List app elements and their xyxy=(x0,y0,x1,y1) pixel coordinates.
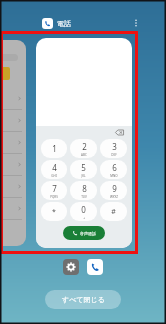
staticText: DEF xyxy=(111,153,117,157)
staticText: 7 xyxy=(52,183,57,194)
staticText: TUV xyxy=(81,195,87,199)
button[interactable]: * xyxy=(41,202,67,221)
staticText: 8 xyxy=(82,183,87,194)
staticText: ABC xyxy=(81,153,87,157)
button[interactable]: # xyxy=(100,202,127,221)
button[interactable]: 設定アプリのプレビュー xyxy=(0,40,26,246)
staticText: JKL xyxy=(81,174,86,178)
button[interactable]: 9 xyxy=(100,181,127,200)
button[interactable]: 7 xyxy=(41,181,67,200)
staticText: すべて閉じる xyxy=(62,295,105,304)
staticText: PQRS xyxy=(50,195,58,199)
staticText: # xyxy=(111,207,116,217)
staticText: WXYZ xyxy=(110,195,118,199)
staticText: MNO xyxy=(110,174,118,178)
button[interactable]: 削除 xyxy=(36,38,132,248)
button[interactable]: 1 xyxy=(41,139,67,158)
staticText: 音声通話 xyxy=(80,231,96,236)
staticText: 電話 xyxy=(57,19,71,28)
button[interactable]: 設定 xyxy=(63,259,79,275)
button[interactable]: 6 xyxy=(100,160,127,179)
button[interactable]: 電話アプリ xyxy=(42,18,53,29)
button[interactable]: その他のオプション xyxy=(128,16,144,30)
staticText: * xyxy=(52,207,56,217)
staticText: 3 xyxy=(112,141,117,152)
button[interactable]: 0 xyxy=(70,202,97,221)
staticText: 1 xyxy=(52,143,57,154)
staticText: 2 xyxy=(82,141,87,152)
button[interactable]: 電話 xyxy=(87,259,103,275)
staticText: 4 xyxy=(52,162,57,173)
staticText: 6 xyxy=(112,162,117,173)
button[interactable]: 4 xyxy=(41,160,67,179)
button[interactable]: すべて閉じる xyxy=(45,290,121,309)
staticText: + xyxy=(83,216,85,220)
staticText: 9 xyxy=(112,183,117,194)
button[interactable]: 5 xyxy=(70,160,97,179)
button[interactable]: 削除 xyxy=(114,127,125,138)
button[interactable]: 8 xyxy=(70,181,97,200)
staticText: GHI xyxy=(51,174,57,178)
button[interactable]: 3 xyxy=(100,139,127,158)
staticText: 0 xyxy=(81,204,86,215)
staticText: 5 xyxy=(81,162,86,173)
button[interactable]: 2 xyxy=(70,139,97,158)
button[interactable]: 音声通話 xyxy=(63,226,105,240)
